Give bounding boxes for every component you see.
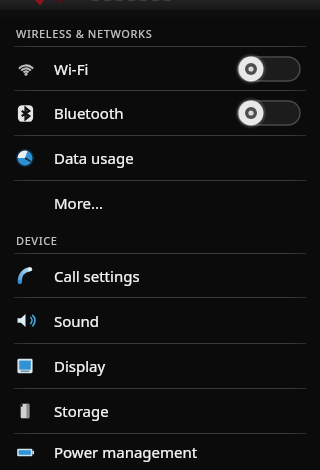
staticText: Wi-Fi [54,59,89,79]
button[interactable]: Call settings [0,254,320,297]
button[interactable]: Power management [0,434,320,470]
staticText: Sound [54,311,100,331]
staticText: Display [54,356,106,376]
button[interactable]: Data usage [0,136,320,180]
staticText: Storage [54,401,109,421]
button[interactable]: Bluetooth [0,91,320,135]
staticText: WIRELESS & NETWORKS [16,26,153,41]
button[interactable]: Toggle [236,100,302,126]
staticText: More... [54,193,104,213]
staticText: DEVICE [16,233,58,248]
button[interactable]: Toggle [236,56,302,82]
staticText: Call settings [54,266,140,286]
button[interactable]: More... [0,181,320,224]
button[interactable]: Display [0,344,320,388]
staticText: Data usage [54,148,134,168]
button[interactable]: Wi-Fi [0,47,320,90]
staticText: Bluetooth [54,103,124,123]
button[interactable]: Sound [0,298,320,343]
button[interactable]: Storage [0,389,320,433]
staticText: Power management [54,442,198,462]
